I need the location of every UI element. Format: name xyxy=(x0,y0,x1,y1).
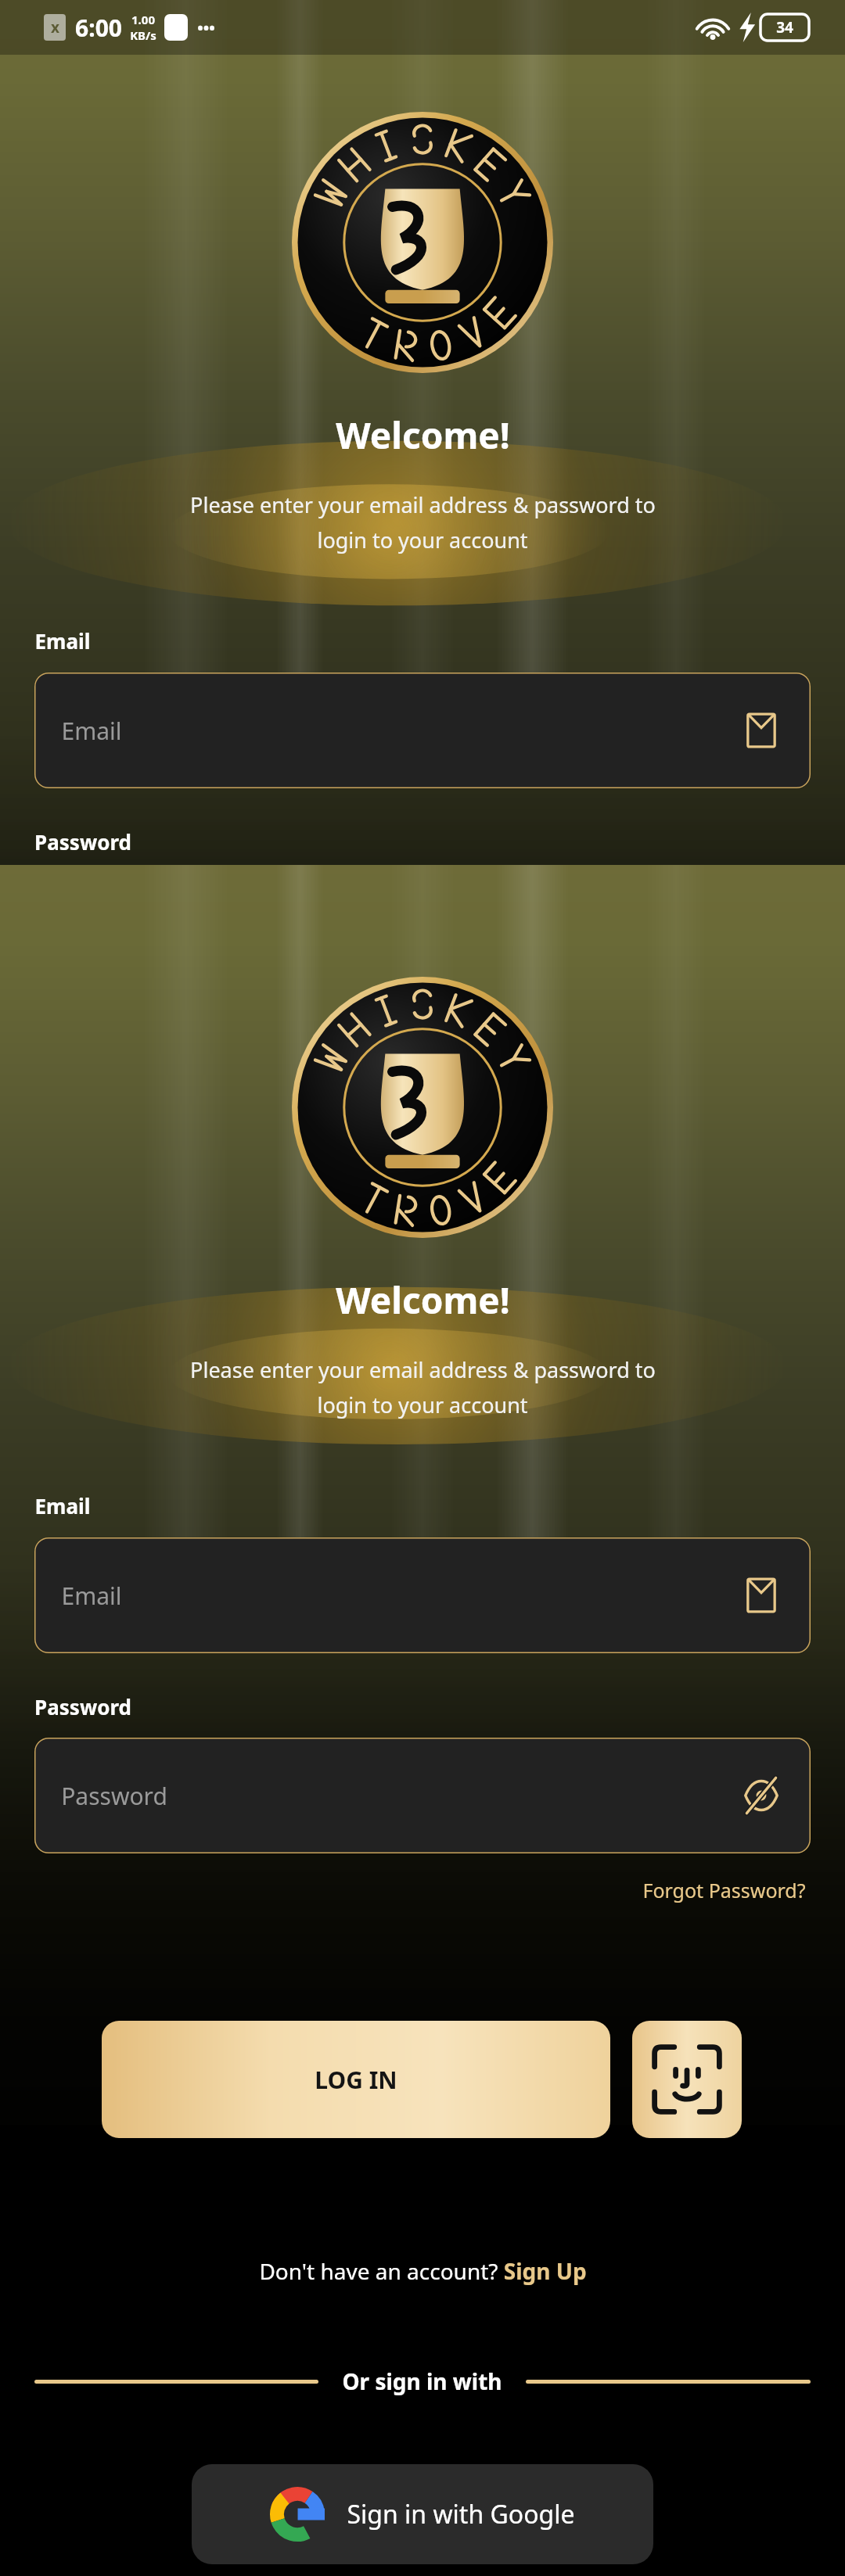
button[interactable]: Email icon xyxy=(740,709,782,752)
button[interactable]: Log in with Face ID xyxy=(632,2021,742,2138)
button[interactable]: LOG IN xyxy=(102,1156,610,1273)
button[interactable]: Forgot Password? xyxy=(638,1007,811,1043)
staticText: 34 xyxy=(776,17,793,38)
staticText: Email xyxy=(61,1580,122,1612)
button[interactable]: Password xyxy=(34,1738,811,1853)
button[interactable]: LOG IN xyxy=(102,2021,610,2138)
staticText: Or sign in with xyxy=(342,2366,502,2396)
staticText: Sign in with Google xyxy=(347,2497,575,2531)
staticText: KB/s xyxy=(130,27,156,43)
button[interactable]: Password xyxy=(34,873,811,988)
staticText: Password xyxy=(61,1780,167,1812)
button[interactable]: Log in with Face ID xyxy=(632,1156,742,1273)
staticText: LOG IN xyxy=(315,2064,397,2096)
staticText: Password xyxy=(34,828,131,856)
staticText: Forgot Password? xyxy=(642,1012,806,1039)
staticText: 6:00 xyxy=(75,12,122,44)
button[interactable]: Email icon xyxy=(740,1574,782,1616)
staticText: LOG IN xyxy=(315,1199,397,1231)
staticText: Email xyxy=(61,715,122,747)
button[interactable]: Email xyxy=(34,673,811,788)
staticText: Email xyxy=(34,1492,91,1519)
button[interactable]: Sign in with Google xyxy=(192,2464,653,2564)
staticText: Forgot Password? xyxy=(642,1877,806,1903)
button[interactable]: Show password xyxy=(740,1774,782,1817)
staticText: 1.00 xyxy=(131,12,155,27)
staticText: Password xyxy=(34,1693,131,1720)
staticText: Welcome! xyxy=(336,1275,510,1325)
staticText: x xyxy=(51,17,59,38)
staticText: Please enter your email address & passwo… xyxy=(190,490,656,519)
button[interactable]: Forgot Password? xyxy=(638,1872,811,1908)
staticText: ••• xyxy=(197,17,215,38)
staticText: login to your account xyxy=(317,526,528,554)
staticText: login to your account xyxy=(317,1390,528,1419)
button[interactable]: Email xyxy=(34,1537,811,1653)
staticText: Email xyxy=(34,627,91,655)
staticText: Don't have an account? Sign Up xyxy=(259,2256,587,2286)
staticText: Please enter your email address & passwo… xyxy=(190,1355,656,1384)
button[interactable]: Don't have an account? Sign Up xyxy=(251,2251,595,2291)
staticText: Welcome! xyxy=(336,411,510,460)
